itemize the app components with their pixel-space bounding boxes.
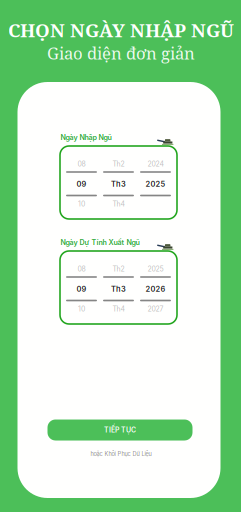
staticText: Giao diện đơn giản	[47, 42, 195, 64]
staticText: Th3	[111, 179, 126, 188]
staticText: 2027	[147, 305, 163, 313]
staticText: Ngày Dự Tính Xuất Ngũ	[60, 238, 139, 247]
staticText: 10	[78, 200, 85, 208]
staticText: Th2	[112, 265, 124, 273]
staticText: Ngày Nhập Ngũ	[60, 133, 111, 142]
button[interactable]: hoặc Khôi Phục Dữ Liệu	[61, 448, 181, 460]
staticText: 09	[76, 284, 86, 293]
staticText: 2025	[145, 179, 165, 188]
staticText: 08	[77, 265, 85, 273]
staticText: 2026	[145, 284, 165, 293]
staticText: TIẾP TỤC	[104, 426, 136, 434]
staticText: CHỌN NGÀY NHẬP NGŨ	[8, 17, 234, 43]
staticText: Th3	[111, 284, 126, 293]
staticText: 08	[77, 160, 85, 168]
staticText: 09	[76, 179, 86, 188]
staticText: Th4	[112, 200, 124, 208]
button[interactable]: TIẾP TỤC	[47, 419, 192, 440]
staticText: 2025	[147, 265, 163, 273]
staticText: hoặc Khôi Phục Dữ Liệu	[90, 451, 151, 457]
staticText: Th4	[112, 305, 124, 313]
staticText: 10	[78, 305, 85, 313]
staticText: 2024	[147, 160, 163, 168]
staticText: Th2	[112, 160, 124, 168]
